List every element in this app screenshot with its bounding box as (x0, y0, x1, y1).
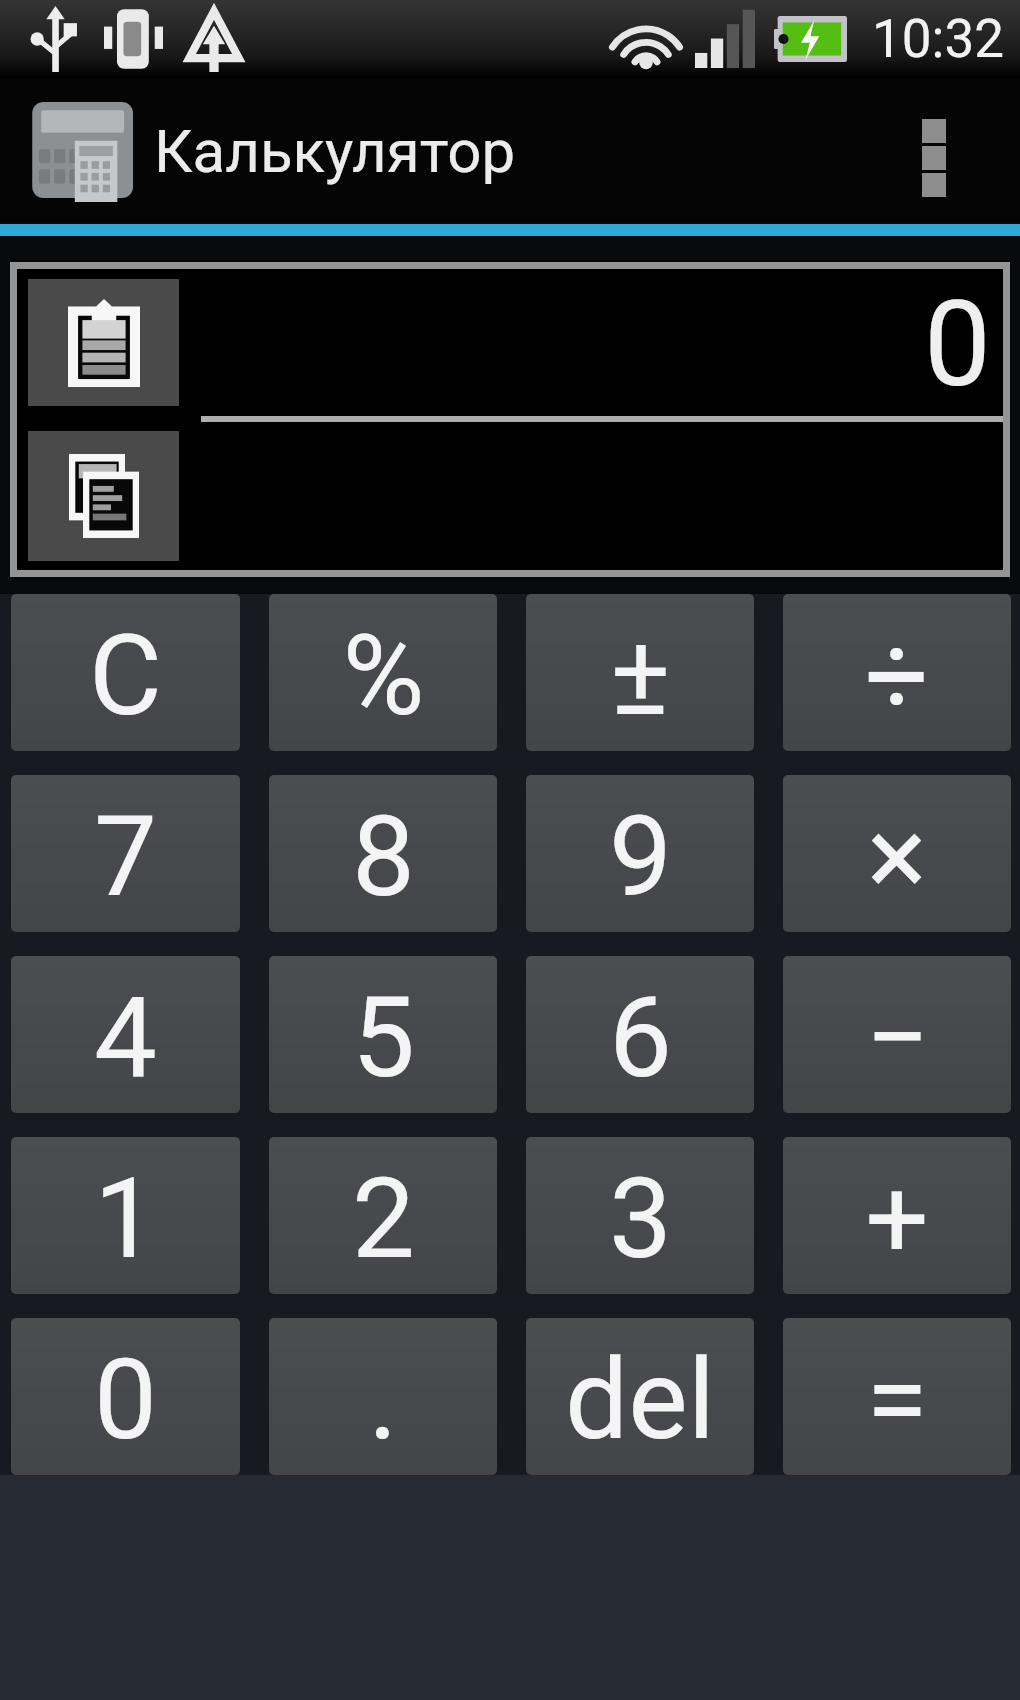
button[interactable]: 6 (526, 956, 754, 1113)
button[interactable]: 2 (269, 1137, 497, 1294)
button[interactable]: % (269, 594, 497, 751)
staticText: 5 (352, 972, 415, 1103)
staticText: del (565, 1334, 715, 1465)
button[interactable]: 7 (11, 775, 240, 932)
staticText: 7 (94, 791, 157, 922)
button[interactable]: × (783, 775, 1011, 932)
button[interactable]: + (783, 1137, 1011, 1294)
button[interactable]: 3 (526, 1137, 754, 1294)
button[interactable]: del (526, 1318, 754, 1475)
staticText: 9 (609, 791, 672, 922)
staticText: × (867, 791, 927, 922)
button[interactable]: = (783, 1318, 1011, 1475)
staticText: C (89, 610, 162, 741)
staticText: Калькулятор (154, 116, 516, 186)
button[interactable]: ÷ (783, 594, 1011, 751)
button[interactable]: . (269, 1318, 497, 1475)
button[interactable]: 8 (269, 775, 497, 932)
staticText: = (866, 1334, 928, 1465)
button[interactable]: 4 (11, 956, 240, 1113)
button[interactable]: Copy (28, 431, 179, 561)
staticText: 8 (352, 791, 415, 922)
button[interactable]: More options (871, 78, 996, 224)
button[interactable]: Paste (28, 279, 179, 406)
staticText: 2 (352, 1153, 415, 1284)
button[interactable]: C (11, 594, 240, 751)
button[interactable]: 1 (11, 1137, 240, 1294)
staticText: − (865, 972, 930, 1103)
button[interactable]: ± (526, 594, 754, 751)
staticText: . (368, 1334, 398, 1465)
staticText: 10:32 (872, 8, 1004, 70)
staticText: 0 (924, 275, 991, 414)
staticText: ÷ (865, 610, 929, 741)
staticText: 4 (94, 972, 157, 1103)
button[interactable]: 5 (269, 956, 497, 1113)
staticText: + (865, 1153, 929, 1284)
staticText: ± (610, 610, 670, 741)
staticText: % (342, 610, 425, 741)
button[interactable]: − (783, 956, 1011, 1113)
staticText: 3 (609, 1153, 672, 1284)
staticText: 1 (94, 1153, 157, 1284)
staticText: 0 (94, 1334, 157, 1465)
button[interactable]: 9 (526, 775, 754, 932)
button[interactable]: 0 (11, 1318, 240, 1475)
staticText: 6 (609, 972, 672, 1103)
